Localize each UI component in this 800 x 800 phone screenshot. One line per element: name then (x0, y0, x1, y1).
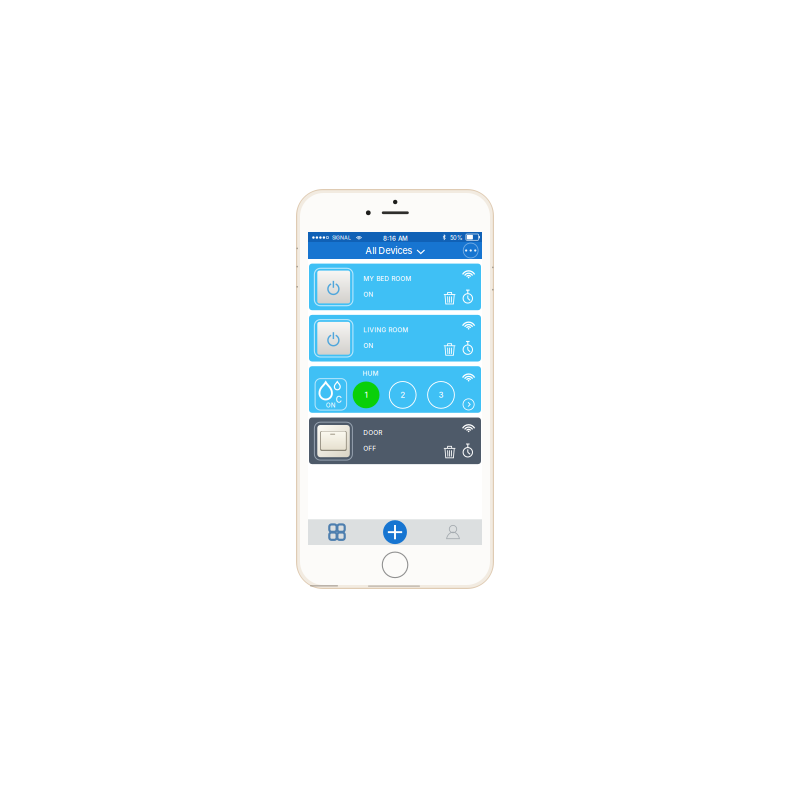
staticText: OFF (363, 444, 376, 452)
button[interactable]: Devices (308, 519, 366, 545)
staticText: All Devices (365, 245, 412, 256)
staticText: ON (326, 401, 336, 409)
staticText: 8:16 AM (383, 235, 408, 242)
staticText: ON (363, 290, 373, 298)
staticText: DOOR (363, 429, 382, 436)
button[interactable]: Add device (366, 519, 424, 545)
button[interactable]: More options (461, 242, 480, 259)
staticText: 3 (438, 390, 443, 400)
staticText: 1 (365, 390, 368, 400)
staticText: HUM (363, 370, 379, 377)
staticText: 2 (400, 390, 405, 400)
button[interactable]: HUM (309, 366, 481, 413)
staticText: MY BED ROOM (363, 275, 411, 283)
staticText: SIGNAL (332, 234, 351, 241)
staticText: C (336, 394, 342, 405)
button[interactable]: MY BED ROOM (309, 264, 481, 310)
button[interactable]: DOOR (309, 417, 481, 464)
button[interactable]: Profile (424, 519, 482, 545)
staticText: 50% (450, 235, 463, 241)
button[interactable]: LIVING ROOM (309, 315, 481, 361)
staticText: LIVING ROOM (363, 326, 408, 334)
staticText: ON (363, 342, 373, 350)
